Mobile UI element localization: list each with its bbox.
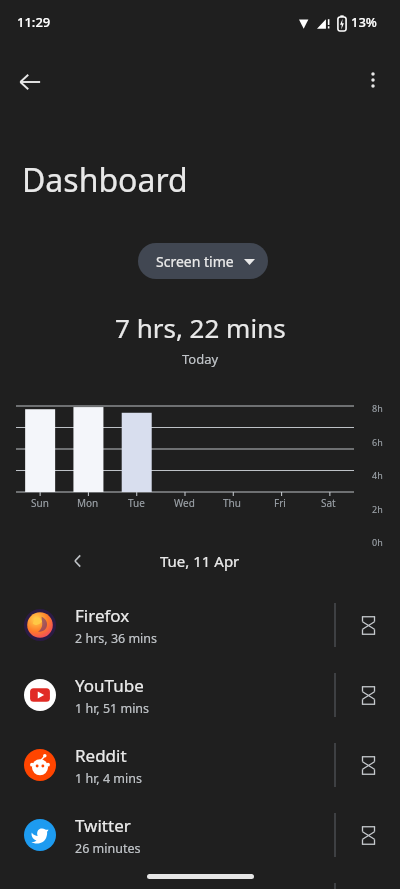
button[interactable]: Set app timer for YouTube	[336, 660, 400, 730]
staticText: 1 hr, 51 mins	[75, 700, 150, 717]
staticText: Tue, 11 Apr	[160, 551, 240, 571]
staticText: Twitter	[75, 814, 131, 837]
button[interactable]: Set app timer for Firefox	[336, 590, 400, 660]
staticText: 11:29	[17, 13, 51, 31]
staticText: 2 hrs, 36 mins	[75, 630, 158, 647]
staticText: Wed	[174, 496, 195, 510]
staticText: 0h	[372, 536, 383, 548]
button[interactable]: Firefox	[0, 590, 400, 660]
staticText: Mon	[77, 496, 99, 510]
button[interactable]: Settings	[0, 870, 400, 889]
staticText: 4h	[372, 469, 383, 481]
button[interactable]: Twitter	[0, 800, 400, 870]
staticText: 1 hr, 4 mins	[75, 770, 142, 787]
staticText: Sat	[321, 496, 336, 510]
staticText: Fri	[274, 496, 286, 510]
staticText: 8h	[372, 402, 383, 414]
staticText: 13%	[351, 13, 377, 31]
button[interactable]: Set app timer for Twitter	[336, 800, 400, 870]
button[interactable]: Set app timer for Reddit	[336, 730, 400, 800]
staticText: Tue	[128, 496, 145, 510]
staticText: 26 minutes	[75, 840, 141, 857]
staticText: 2h	[372, 503, 383, 515]
staticText: Thu	[223, 496, 241, 510]
button[interactable]: Previous day	[58, 543, 98, 579]
staticText: YouTube	[75, 674, 144, 697]
button[interactable]: Back	[6, 58, 54, 106]
button[interactable]: More options	[351, 58, 395, 102]
staticText: 7 hrs, 22 mins	[115, 310, 286, 345]
staticText: Sun	[31, 496, 49, 510]
button[interactable]: Reddit	[0, 730, 400, 800]
button[interactable]: YouTube	[0, 660, 400, 730]
staticText: Firefox	[75, 604, 130, 627]
staticText: 6h	[372, 436, 383, 448]
staticText: Screen time	[156, 252, 234, 271]
staticText: Dashboard	[22, 158, 188, 202]
staticText: Today	[182, 350, 219, 368]
button[interactable]: Screen time	[138, 243, 268, 279]
staticText: Reddit	[75, 744, 127, 767]
